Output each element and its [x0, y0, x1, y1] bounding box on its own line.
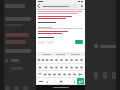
button[interactable]: Key	[67, 71, 72, 78]
button[interactable]: Key	[72, 71, 77, 78]
button[interactable]: Key	[52, 71, 57, 78]
button[interactable]: Key	[64, 56, 69, 64]
button[interactable]: Key	[69, 64, 74, 71]
button[interactable]: Submit	[75, 40, 83, 44]
button[interactable]: Key	[74, 64, 79, 71]
button[interactable]: Key	[37, 56, 41, 64]
button[interactable]: Key	[54, 56, 59, 64]
button[interactable]: Key	[50, 78, 72, 85]
button[interactable]: More options	[80, 4, 84, 8]
button[interactable]: Shift	[37, 71, 43, 78]
button[interactable]	[38, 25, 83, 29]
button[interactable]: Punctuation	[45, 78, 50, 85]
button[interactable]: Back	[37, 4, 41, 8]
button[interactable]: Key	[74, 56, 79, 64]
button[interactable]: Key	[57, 71, 62, 78]
button[interactable]: Key	[59, 56, 64, 64]
button[interactable]: Key	[79, 56, 84, 64]
button[interactable]: Punctuation	[72, 78, 77, 85]
button[interactable]: Key	[41, 56, 45, 64]
button[interactable]: Key	[37, 64, 43, 71]
button[interactable]: Key	[45, 56, 49, 64]
button[interactable]: Key	[64, 64, 69, 71]
button[interactable]: Key	[62, 71, 67, 78]
button[interactable]: Key	[59, 64, 64, 71]
button[interactable]: Backspace	[77, 71, 84, 78]
button[interactable]: Address bar	[41, 4, 79, 8]
button[interactable]: Numbers and symbols	[37, 78, 45, 85]
button[interactable]: Key	[47, 71, 52, 78]
button[interactable]: Key	[54, 64, 59, 71]
button[interactable]: Enter	[77, 78, 84, 85]
button[interactable]: Key	[43, 64, 49, 71]
button[interactable]: Key	[43, 71, 47, 78]
button[interactable]: Key	[79, 64, 84, 71]
button[interactable]: Key	[49, 64, 54, 71]
button[interactable]: Key	[69, 56, 74, 64]
button[interactable]: Key	[49, 56, 54, 64]
